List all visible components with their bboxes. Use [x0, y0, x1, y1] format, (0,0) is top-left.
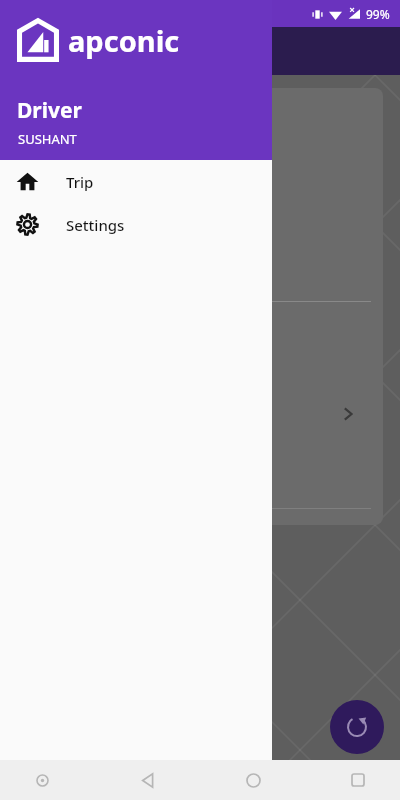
button[interactable]: Home [233, 760, 273, 800]
button[interactable]: Back [127, 760, 167, 800]
button[interactable]: Refresh [330, 700, 384, 754]
staticText: Trip [66, 172, 94, 192]
button[interactable]: Trip [0, 160, 272, 203]
staticText: Settings [66, 215, 125, 235]
staticText: apconic [68, 21, 180, 60]
staticText: SUSHANT [18, 130, 77, 148]
button[interactable]: Assistant [22, 760, 62, 800]
button[interactable]: Settings [0, 203, 272, 246]
staticText: TRIP0000015 - OPEN [28, 97, 177, 117]
button[interactable]: Recent apps [338, 760, 378, 800]
staticText: Pickup from warehouse place, [28, 138, 226, 157]
staticText: 99% [366, 6, 390, 22]
button[interactable]: TRIP0000015 - OPEN [14, 88, 383, 525]
staticText: Driver [17, 96, 82, 125]
staticText: 1:10 [22, 6, 46, 22]
